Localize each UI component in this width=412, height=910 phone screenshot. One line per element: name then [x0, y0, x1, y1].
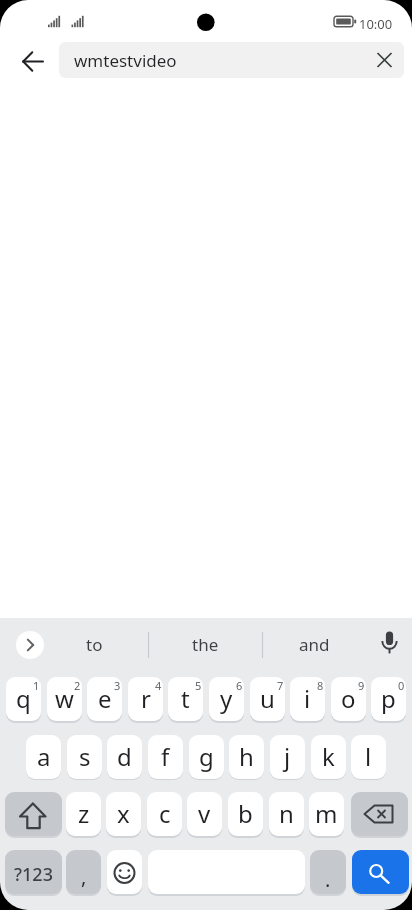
staticText: m: [315, 797, 338, 830]
staticText: l: [365, 740, 372, 773]
button[interactable]: k: [311, 735, 346, 779]
staticText: x: [117, 797, 130, 830]
button[interactable]: w: [47, 677, 82, 721]
staticText: 4: [155, 678, 162, 693]
button[interactable]: l: [351, 735, 386, 779]
button[interactable]: [352, 850, 409, 894]
staticText: 6: [236, 678, 243, 693]
button[interactable]: and: [262, 622, 366, 666]
button[interactable]: to: [40, 622, 148, 666]
staticText: w: [55, 682, 74, 715]
button[interactable]: a: [26, 735, 61, 779]
button[interactable]: [5, 792, 62, 836]
button[interactable]: [16, 631, 44, 659]
staticText: wmtestvideo: [74, 49, 177, 72]
staticText: r: [141, 682, 151, 715]
button[interactable]: i: [290, 677, 325, 721]
button[interactable]: ,: [66, 850, 101, 894]
staticText: 7: [277, 678, 284, 693]
button[interactable]: d: [107, 735, 142, 779]
staticText: e: [98, 682, 112, 715]
staticText: v: [198, 797, 211, 830]
button[interactable]: the: [148, 622, 262, 666]
button[interactable]: o: [331, 677, 366, 721]
staticText: q: [16, 682, 31, 715]
staticText: 10:00: [359, 15, 393, 33]
staticText: 3: [114, 678, 121, 693]
staticText: z: [78, 797, 90, 830]
button[interactable]: q: [6, 677, 41, 721]
staticText: b: [238, 797, 253, 830]
button[interactable]: y: [209, 677, 244, 721]
staticText: h: [239, 740, 254, 773]
staticText: k: [322, 740, 335, 773]
button[interactable]: [351, 792, 408, 836]
button[interactable]: r: [128, 677, 163, 721]
staticText: g: [199, 740, 214, 773]
staticText: 1: [33, 678, 40, 693]
staticText: y: [220, 682, 233, 715]
staticText: ,: [81, 863, 87, 890]
staticText: s: [79, 740, 91, 773]
staticText: a: [37, 740, 51, 773]
staticText: 9: [358, 678, 365, 693]
button[interactable]: ?123: [5, 850, 62, 894]
staticText: 0: [398, 678, 405, 693]
button[interactable]: [148, 850, 305, 894]
button[interactable]: t: [168, 677, 203, 721]
staticText: t: [181, 682, 190, 715]
staticText: to: [86, 633, 103, 656]
button[interactable]: wmtestvideo: [59, 42, 404, 78]
button[interactable]: [368, 42, 404, 78]
button[interactable]: h: [229, 735, 264, 779]
staticText: o: [341, 682, 356, 715]
button[interactable]: j: [270, 735, 305, 779]
staticText: f: [161, 740, 170, 773]
button[interactable]: x: [106, 792, 141, 836]
button[interactable]: n: [269, 792, 304, 836]
staticText: c: [159, 797, 171, 830]
button[interactable]: m: [309, 792, 344, 836]
staticText: 8: [317, 678, 324, 693]
button[interactable]: g: [189, 735, 224, 779]
staticText: u: [260, 682, 275, 715]
staticText: 5: [195, 678, 202, 693]
button[interactable]: [13, 41, 53, 81]
staticText: n: [279, 797, 294, 830]
staticText: ?123: [14, 862, 53, 887]
button[interactable]: f: [148, 735, 183, 779]
button[interactable]: u: [250, 677, 285, 721]
button[interactable]: .: [310, 850, 346, 894]
button[interactable]: [373, 628, 405, 662]
button[interactable]: s: [67, 735, 102, 779]
button[interactable]: e: [87, 677, 122, 721]
staticText: d: [117, 740, 132, 773]
button[interactable]: [107, 850, 142, 894]
button[interactable]: c: [147, 792, 182, 836]
staticText: j: [284, 740, 291, 773]
button[interactable]: z: [66, 792, 101, 836]
staticText: 2: [74, 678, 81, 693]
button[interactable]: b: [228, 792, 263, 836]
staticText: .: [325, 866, 331, 893]
staticText: p: [381, 682, 396, 715]
button[interactable]: v: [187, 792, 222, 836]
staticText: i: [304, 682, 311, 715]
staticText: the: [192, 633, 219, 656]
staticText: and: [299, 633, 330, 656]
button[interactable]: p: [371, 677, 406, 721]
